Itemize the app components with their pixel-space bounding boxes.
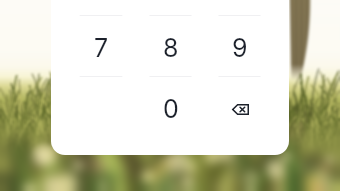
staticText: 0 xyxy=(163,94,179,124)
other: Backspace xyxy=(223,90,257,124)
button[interactable]: 8 xyxy=(136,15,205,76)
button[interactable]: 9 xyxy=(205,15,274,76)
staticText: 7 xyxy=(94,33,109,63)
staticText: 9 xyxy=(232,33,248,63)
button[interactable]: 7 xyxy=(66,15,136,76)
button[interactable]: 0 xyxy=(136,76,205,137)
button[interactable]: Backspace xyxy=(205,76,274,137)
staticText: 8 xyxy=(163,33,179,63)
